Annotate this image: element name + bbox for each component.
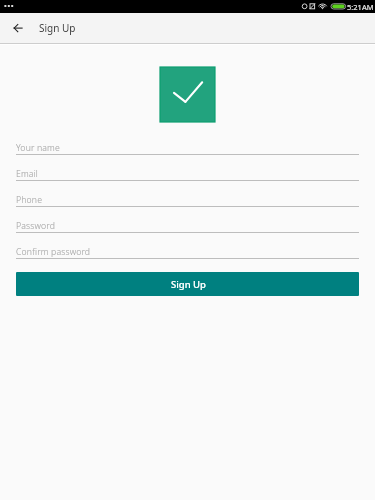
button[interactable]: Sign Up [16, 272, 359, 296]
staticText: Your name [16, 142, 60, 154]
button[interactable]: Password [16, 212, 359, 238]
staticText: Phone [16, 194, 43, 206]
button[interactable]: Confirm password [16, 238, 359, 264]
staticText: Sign Up [171, 278, 207, 291]
staticText: 5:21AM [347, 2, 374, 12]
staticText: Password [16, 220, 56, 232]
staticText: Confirm password [16, 246, 91, 258]
button[interactable]: Phone [16, 186, 359, 212]
button[interactable]: Email [16, 160, 359, 186]
button[interactable]: Back [4, 13, 34, 43]
staticText: Email [16, 168, 38, 180]
button[interactable]: Your name [16, 134, 359, 160]
staticText: Sign Up [39, 21, 76, 35]
